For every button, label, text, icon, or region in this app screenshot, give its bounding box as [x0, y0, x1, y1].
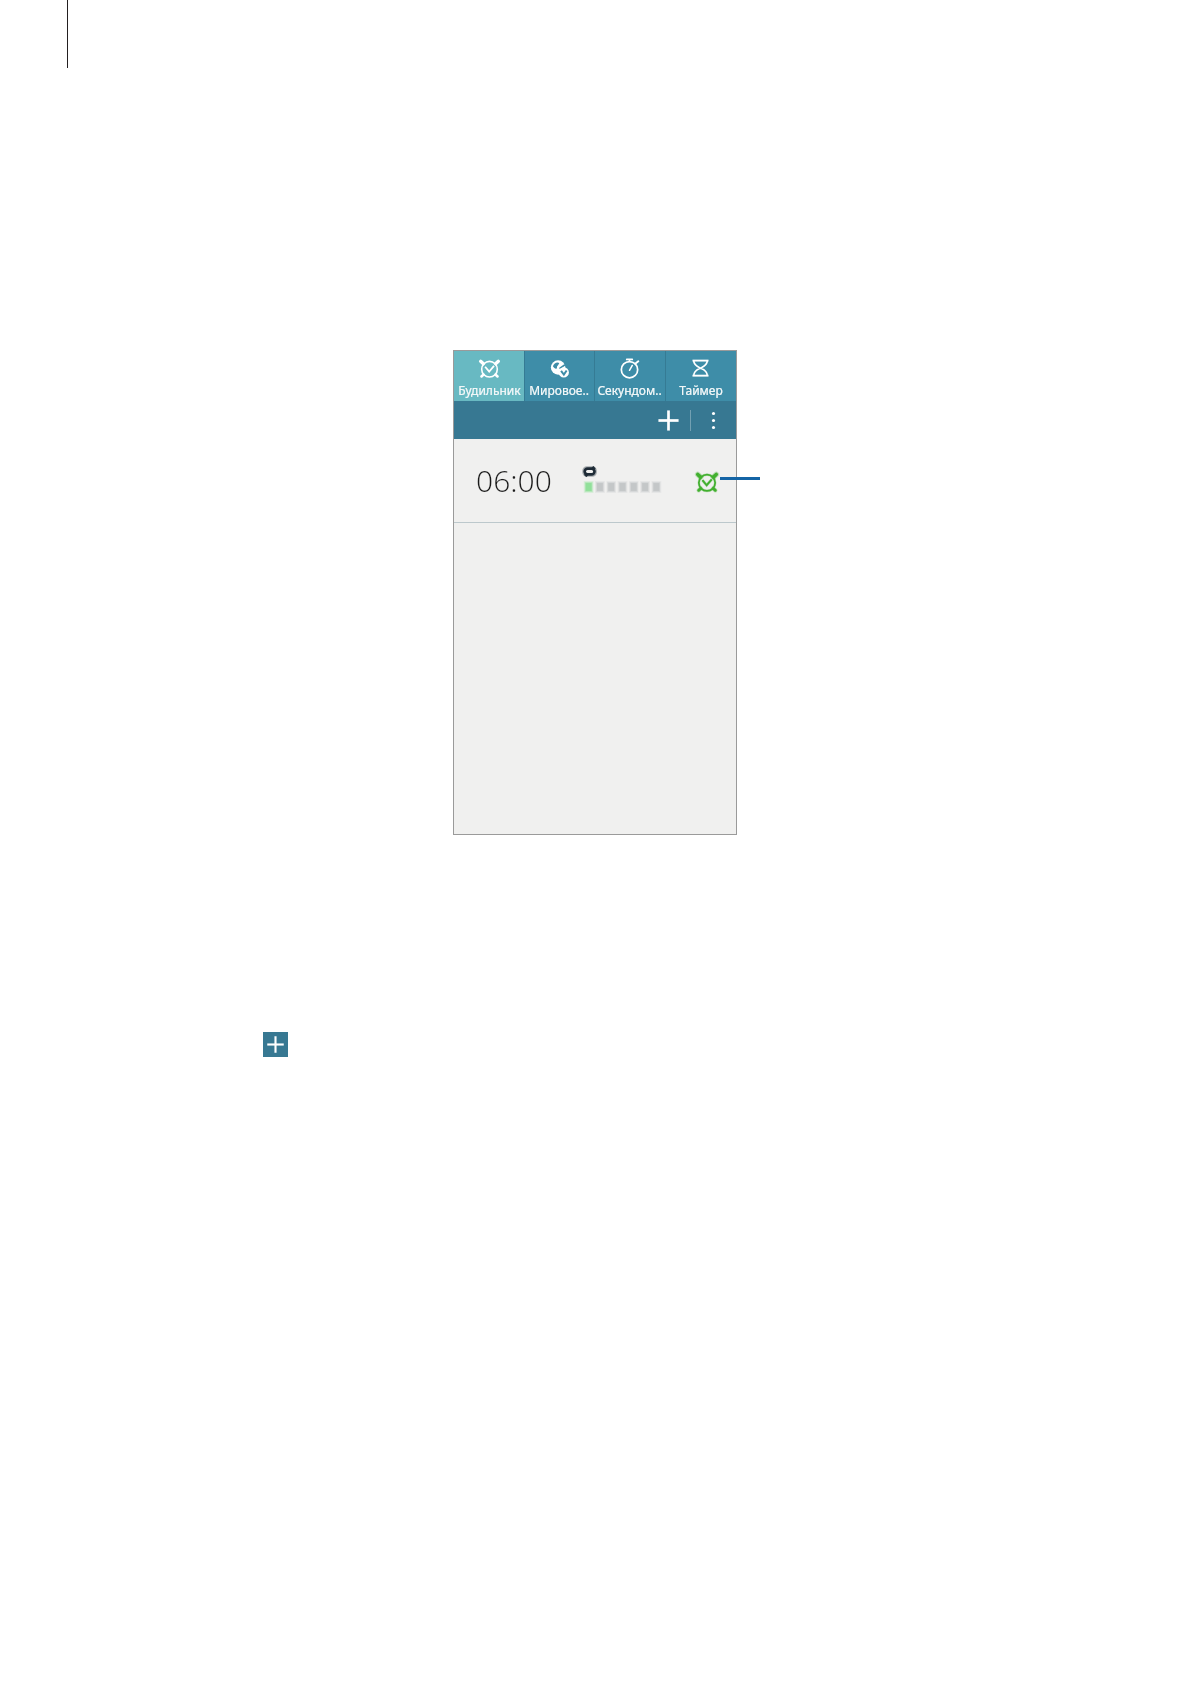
button[interactable]: 06:00	[454, 439, 736, 522]
button[interactable]: Add alarm	[646, 401, 690, 439]
button[interactable]: Секундом..	[594, 351, 665, 401]
button[interactable]: More options	[691, 401, 736, 439]
button[interactable]: Таймер	[665, 351, 736, 401]
staticText: Таймер	[679, 382, 723, 398]
staticText: 06:00	[476, 460, 552, 501]
button[interactable]: Мировое..	[524, 351, 594, 401]
staticText: Секундом..	[597, 382, 662, 398]
button[interactable]: Toggle alarm	[692, 466, 722, 496]
button[interactable]: Add alarm	[263, 1032, 288, 1057]
staticText: Мировое..	[529, 382, 589, 398]
staticText: Будильник	[458, 382, 521, 398]
button[interactable]: Будильник	[454, 351, 524, 401]
